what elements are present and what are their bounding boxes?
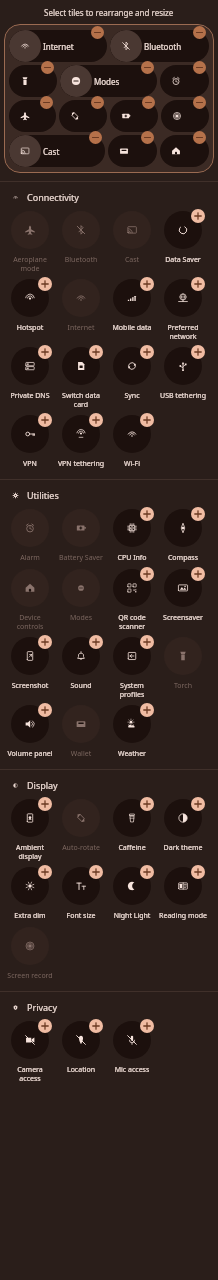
button[interactable]: Add tile [108, 867, 156, 921]
button[interactable]: Add tile [38, 277, 52, 291]
button[interactable]: Cast [108, 211, 156, 265]
button[interactable] [160, 135, 209, 167]
button[interactable]: Add tile [57, 347, 105, 409]
button[interactable]: Add tile [191, 277, 205, 291]
button[interactable]: Add tile [191, 507, 205, 521]
button[interactable]: Device controls [6, 569, 54, 631]
button[interactable]: Add tile [140, 865, 154, 879]
button[interactable]: Add tile [159, 279, 207, 341]
button[interactable]: Auto-rotate [57, 799, 105, 853]
button[interactable] [108, 135, 157, 167]
button[interactable]: Add tile [6, 1021, 54, 1083]
staticText: Ambient display [6, 843, 54, 861]
button[interactable]: Add tile [108, 569, 156, 631]
button[interactable]: Aeroplane mode [6, 211, 54, 273]
button[interactable]: Remove tile [141, 131, 154, 144]
button[interactable]: Add tile [140, 1019, 154, 1033]
button[interactable]: Add tile [57, 415, 105, 469]
button[interactable]: Add tile [159, 347, 207, 401]
button[interactable]: Add tile [159, 211, 207, 265]
button[interactable] [160, 65, 209, 97]
button[interactable]: Internet [9, 30, 107, 62]
button[interactable]: Remove tile [193, 26, 206, 39]
button[interactable] [110, 100, 158, 132]
button[interactable] [161, 100, 209, 132]
button[interactable]: Bluetooth [110, 30, 209, 62]
button[interactable]: Add tile [140, 703, 154, 717]
button[interactable]: Internet [57, 279, 105, 333]
button[interactable]: Add tile [89, 635, 103, 649]
button[interactable]: Add tile [140, 507, 154, 521]
button[interactable]: Add tile [38, 703, 52, 717]
button[interactable]: Add tile [89, 413, 103, 427]
button[interactable]: Add tile [191, 797, 205, 811]
button[interactable]: Modes [60, 65, 157, 97]
button[interactable]: Add tile [108, 637, 156, 699]
button[interactable]: Remove tile [91, 96, 104, 109]
button[interactable]: Add tile [57, 637, 105, 691]
button[interactable]: Add tile [38, 413, 52, 427]
button[interactable]: Add tile [159, 799, 207, 853]
button[interactable]: Add tile [38, 797, 52, 811]
staticText: Extra dim [6, 911, 54, 921]
button[interactable]: Add tile [140, 567, 154, 581]
button[interactable]: Bluetooth [57, 211, 105, 265]
button[interactable]: Add tile [159, 867, 207, 921]
button[interactable]: Add tile [89, 345, 103, 359]
button[interactable]: Add tile [191, 209, 205, 223]
button[interactable] [59, 100, 107, 132]
button[interactable]: Add tile [140, 797, 154, 811]
button[interactable]: Add tile [6, 347, 54, 401]
button[interactable]: Remove tile [142, 96, 155, 109]
button[interactable]: Add tile [191, 345, 205, 359]
button[interactable]: Add tile [108, 509, 156, 563]
button[interactable]: Add tile [38, 1019, 52, 1033]
button[interactable]: Battery Saver [57, 509, 105, 563]
button[interactable]: Remove tile [40, 96, 53, 109]
button[interactable]: Add tile [6, 705, 54, 759]
button[interactable]: Wallet [57, 705, 105, 759]
button[interactable]: Add tile [6, 279, 54, 333]
button[interactable] [9, 65, 57, 97]
button[interactable]: Add tile [108, 347, 156, 401]
button[interactable]: Add tile [140, 345, 154, 359]
button[interactable]: Add tile [89, 865, 103, 879]
button[interactable]: Add tile [108, 415, 156, 469]
button[interactable]: Remove tile [193, 96, 206, 109]
button[interactable]: Add tile [57, 867, 105, 921]
button[interactable]: Add tile [108, 705, 156, 759]
button[interactable]: Add tile [6, 415, 54, 469]
button[interactable]: Add tile [89, 1019, 103, 1033]
button[interactable]: Alarm [6, 509, 54, 563]
button[interactable]: Screen record [6, 927, 54, 981]
button[interactable]: Modes [57, 569, 105, 623]
button[interactable]: Torch [159, 637, 207, 691]
button[interactable]: Add tile [108, 799, 156, 853]
button[interactable]: Add tile [6, 867, 54, 921]
button[interactable]: Remove tile [141, 61, 154, 74]
button[interactable]: Add tile [108, 279, 156, 333]
button[interactable]: Add tile [38, 635, 52, 649]
button[interactable] [9, 100, 56, 132]
staticText: Screen record [6, 971, 54, 981]
button[interactable]: Add tile [140, 413, 154, 427]
button[interactable]: Add tile [6, 637, 54, 691]
button[interactable]: Add tile [159, 509, 207, 563]
button[interactable]: Remove tile [91, 26, 104, 39]
button[interactable]: Add tile [159, 569, 207, 623]
button[interactable]: Remove tile [193, 61, 206, 74]
button[interactable]: Remove tile [193, 131, 206, 144]
button[interactable]: Add tile [38, 345, 52, 359]
button[interactable]: Add tile [57, 1021, 105, 1075]
button[interactable]: Add tile [108, 1021, 156, 1075]
button[interactable]: Remove tile [89, 131, 102, 144]
button[interactable]: Add tile [140, 635, 154, 649]
button[interactable]: Add tile [191, 865, 205, 879]
button[interactable]: Add tile [191, 567, 205, 581]
button[interactable]: Remove tile [41, 61, 54, 74]
button[interactable]: Add tile [38, 865, 52, 879]
staticText: Mic access [108, 1065, 156, 1075]
button[interactable]: Cast [9, 135, 105, 167]
button[interactable]: Add tile [140, 277, 154, 291]
button[interactable]: Add tile [6, 799, 54, 861]
